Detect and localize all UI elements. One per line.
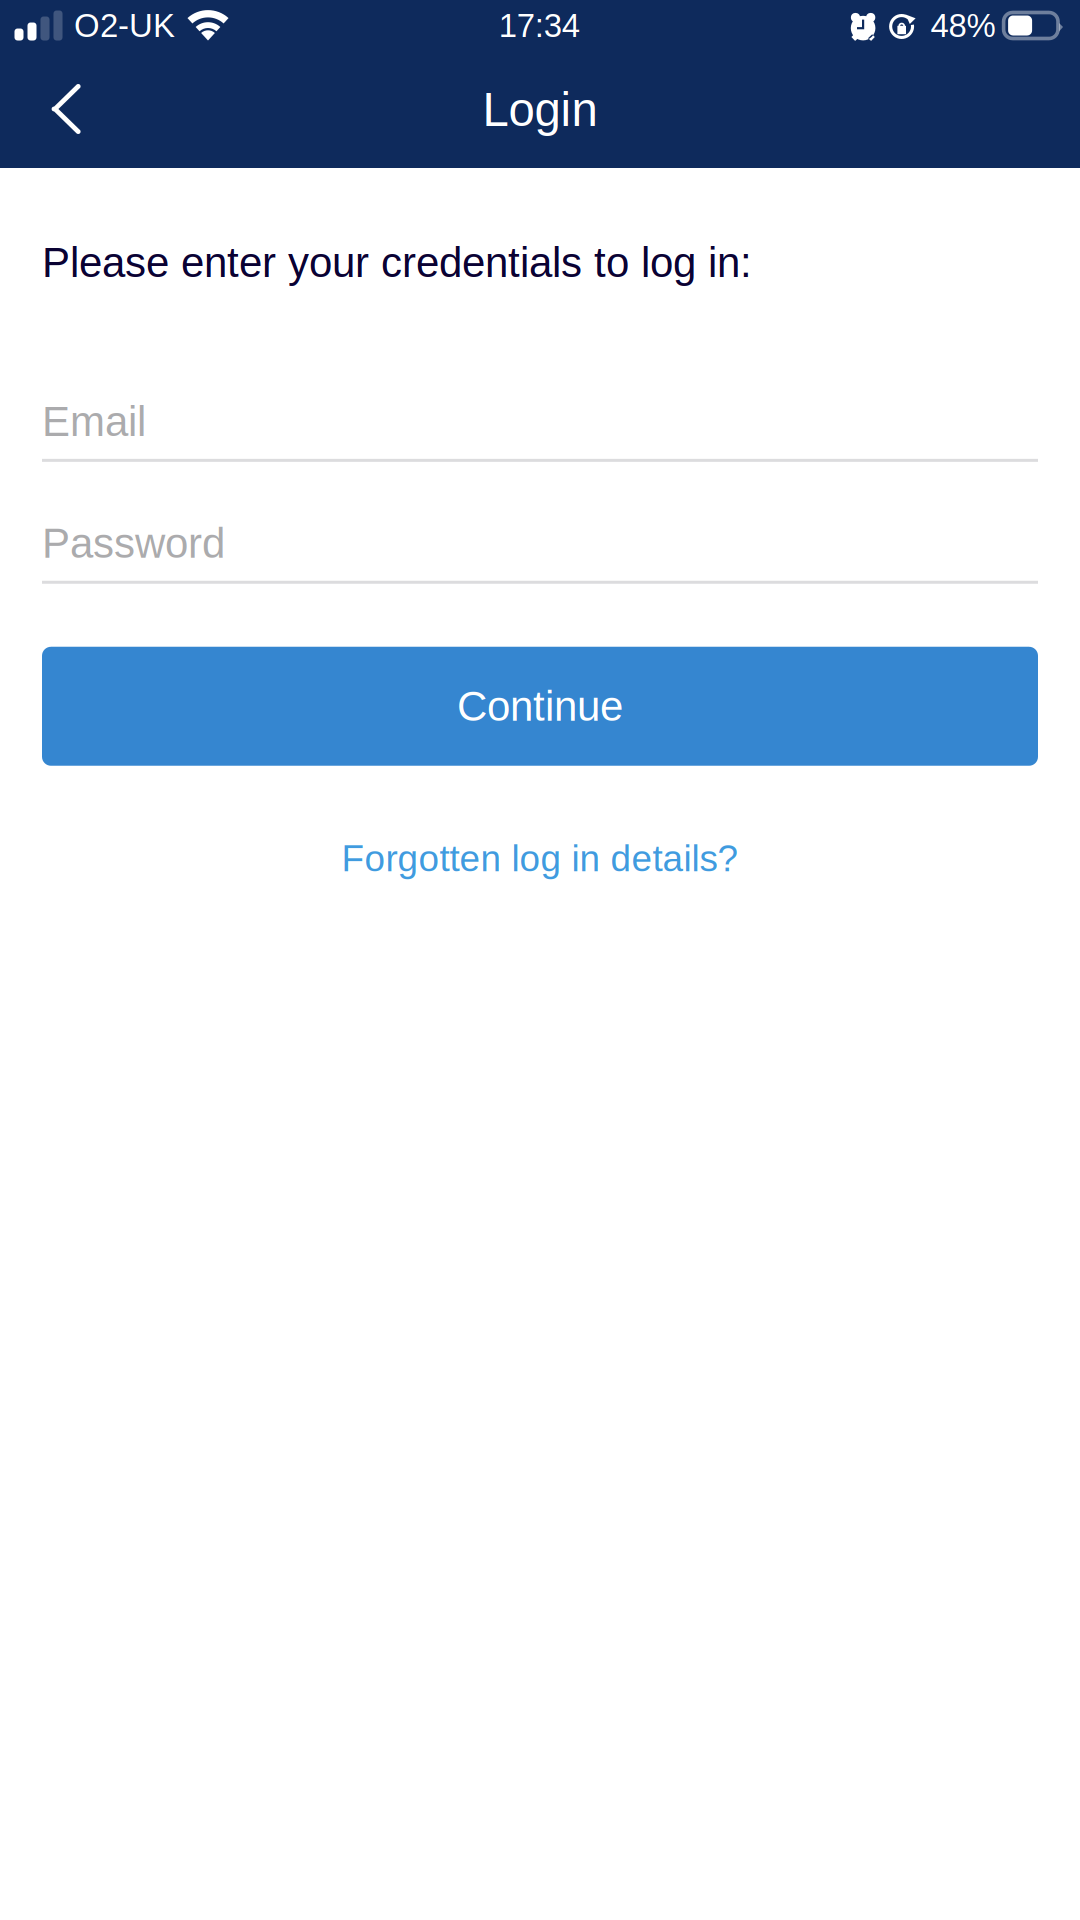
staticText: Forgotten log in details? [341,838,738,879]
staticText: Login [482,83,597,136]
button[interactable]: Back [0,64,131,163]
staticText: 17:34 [499,7,580,44]
staticText: Continue [457,683,623,730]
staticText: Password [42,520,225,567]
staticText: O2-UK [74,7,175,44]
staticText: Please enter your credentials to log in: [42,239,752,286]
button[interactable]: Continue [42,647,1038,766]
button[interactable]: Forgotten log in details? [42,838,1038,879]
staticText: 48% [931,7,996,44]
staticText: Email [42,398,146,445]
